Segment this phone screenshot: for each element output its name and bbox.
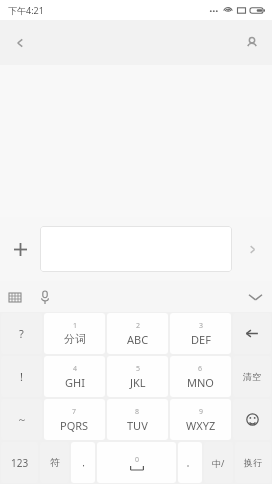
staticText: PQRS bbox=[60, 418, 89, 433]
other: Space bbox=[127, 455, 147, 470]
button[interactable]: 。 bbox=[178, 442, 202, 483]
staticText: 换行 bbox=[244, 457, 262, 468]
staticText: JKL bbox=[130, 375, 146, 390]
button[interactable]: 换行 bbox=[235, 442, 271, 483]
button[interactable]: Emoji bbox=[233, 399, 271, 440]
button[interactable]: Space bbox=[97, 442, 176, 483]
button[interactable]: Add bbox=[0, 229, 40, 269]
staticText: 5 bbox=[136, 364, 141, 374]
button[interactable]: 6 bbox=[170, 356, 231, 397]
button[interactable]: 7 bbox=[44, 399, 105, 440]
staticText: 0 bbox=[135, 455, 140, 465]
staticText: 8 bbox=[135, 407, 140, 417]
button[interactable]: ～ bbox=[1, 399, 42, 440]
button[interactable]: Keyboard layout bbox=[0, 282, 30, 312]
button[interactable]: Back bbox=[0, 23, 40, 63]
staticText: 9 bbox=[199, 407, 204, 417]
button[interactable]: 9 bbox=[170, 399, 231, 440]
staticText: ! bbox=[20, 369, 23, 384]
button[interactable]: 符 bbox=[40, 442, 69, 483]
button[interactable]: Hide keyboard bbox=[238, 281, 272, 312]
button[interactable]: 1 bbox=[44, 313, 105, 354]
button[interactable]: 3 bbox=[170, 313, 231, 354]
staticText: 3 bbox=[199, 321, 204, 331]
staticText: ～ bbox=[17, 413, 27, 426]
staticText: WXYZ bbox=[186, 418, 216, 433]
staticText: 1 bbox=[73, 321, 78, 331]
button[interactable]: 4 bbox=[44, 356, 105, 397]
staticText: DEF bbox=[191, 332, 211, 347]
staticText: 4 bbox=[73, 364, 78, 374]
button[interactable]: Backspace bbox=[233, 313, 271, 354]
staticText: MNO bbox=[187, 375, 214, 390]
staticText: 中/ bbox=[212, 457, 225, 469]
button[interactable]: 8 bbox=[107, 399, 168, 440]
staticText: TUV bbox=[127, 418, 148, 433]
button[interactable]: Voice input bbox=[30, 282, 60, 312]
staticText: GHI bbox=[65, 375, 85, 390]
button[interactable] bbox=[40, 226, 232, 272]
staticText: ， bbox=[79, 457, 88, 468]
button[interactable]: 123 bbox=[1, 442, 38, 483]
other: Backspace bbox=[245, 328, 259, 339]
button[interactable]: Send bbox=[232, 229, 272, 269]
other: Emoji bbox=[246, 413, 259, 426]
button[interactable]: 5 bbox=[107, 356, 168, 397]
staticText: 2 bbox=[136, 321, 141, 331]
button[interactable]: 清空 bbox=[233, 356, 271, 397]
staticText: 下午4:21 bbox=[8, 4, 44, 16]
button[interactable]: ? bbox=[1, 313, 42, 354]
staticText: ABC bbox=[127, 332, 149, 347]
button[interactable]: ! bbox=[1, 356, 42, 397]
staticText: 分词 bbox=[64, 332, 86, 346]
staticText: ? bbox=[19, 326, 24, 341]
staticText: 7 bbox=[72, 407, 77, 417]
button[interactable]: 中/ bbox=[204, 442, 233, 483]
staticText: 123 bbox=[11, 456, 29, 470]
button[interactable]: 2 bbox=[107, 313, 168, 354]
staticText: 6 bbox=[198, 364, 203, 374]
staticText: 。 bbox=[186, 457, 195, 468]
button[interactable]: Profile bbox=[232, 23, 272, 63]
staticText: 清空 bbox=[243, 371, 261, 382]
staticText: 符 bbox=[50, 456, 60, 469]
button[interactable]: ， bbox=[71, 442, 95, 483]
